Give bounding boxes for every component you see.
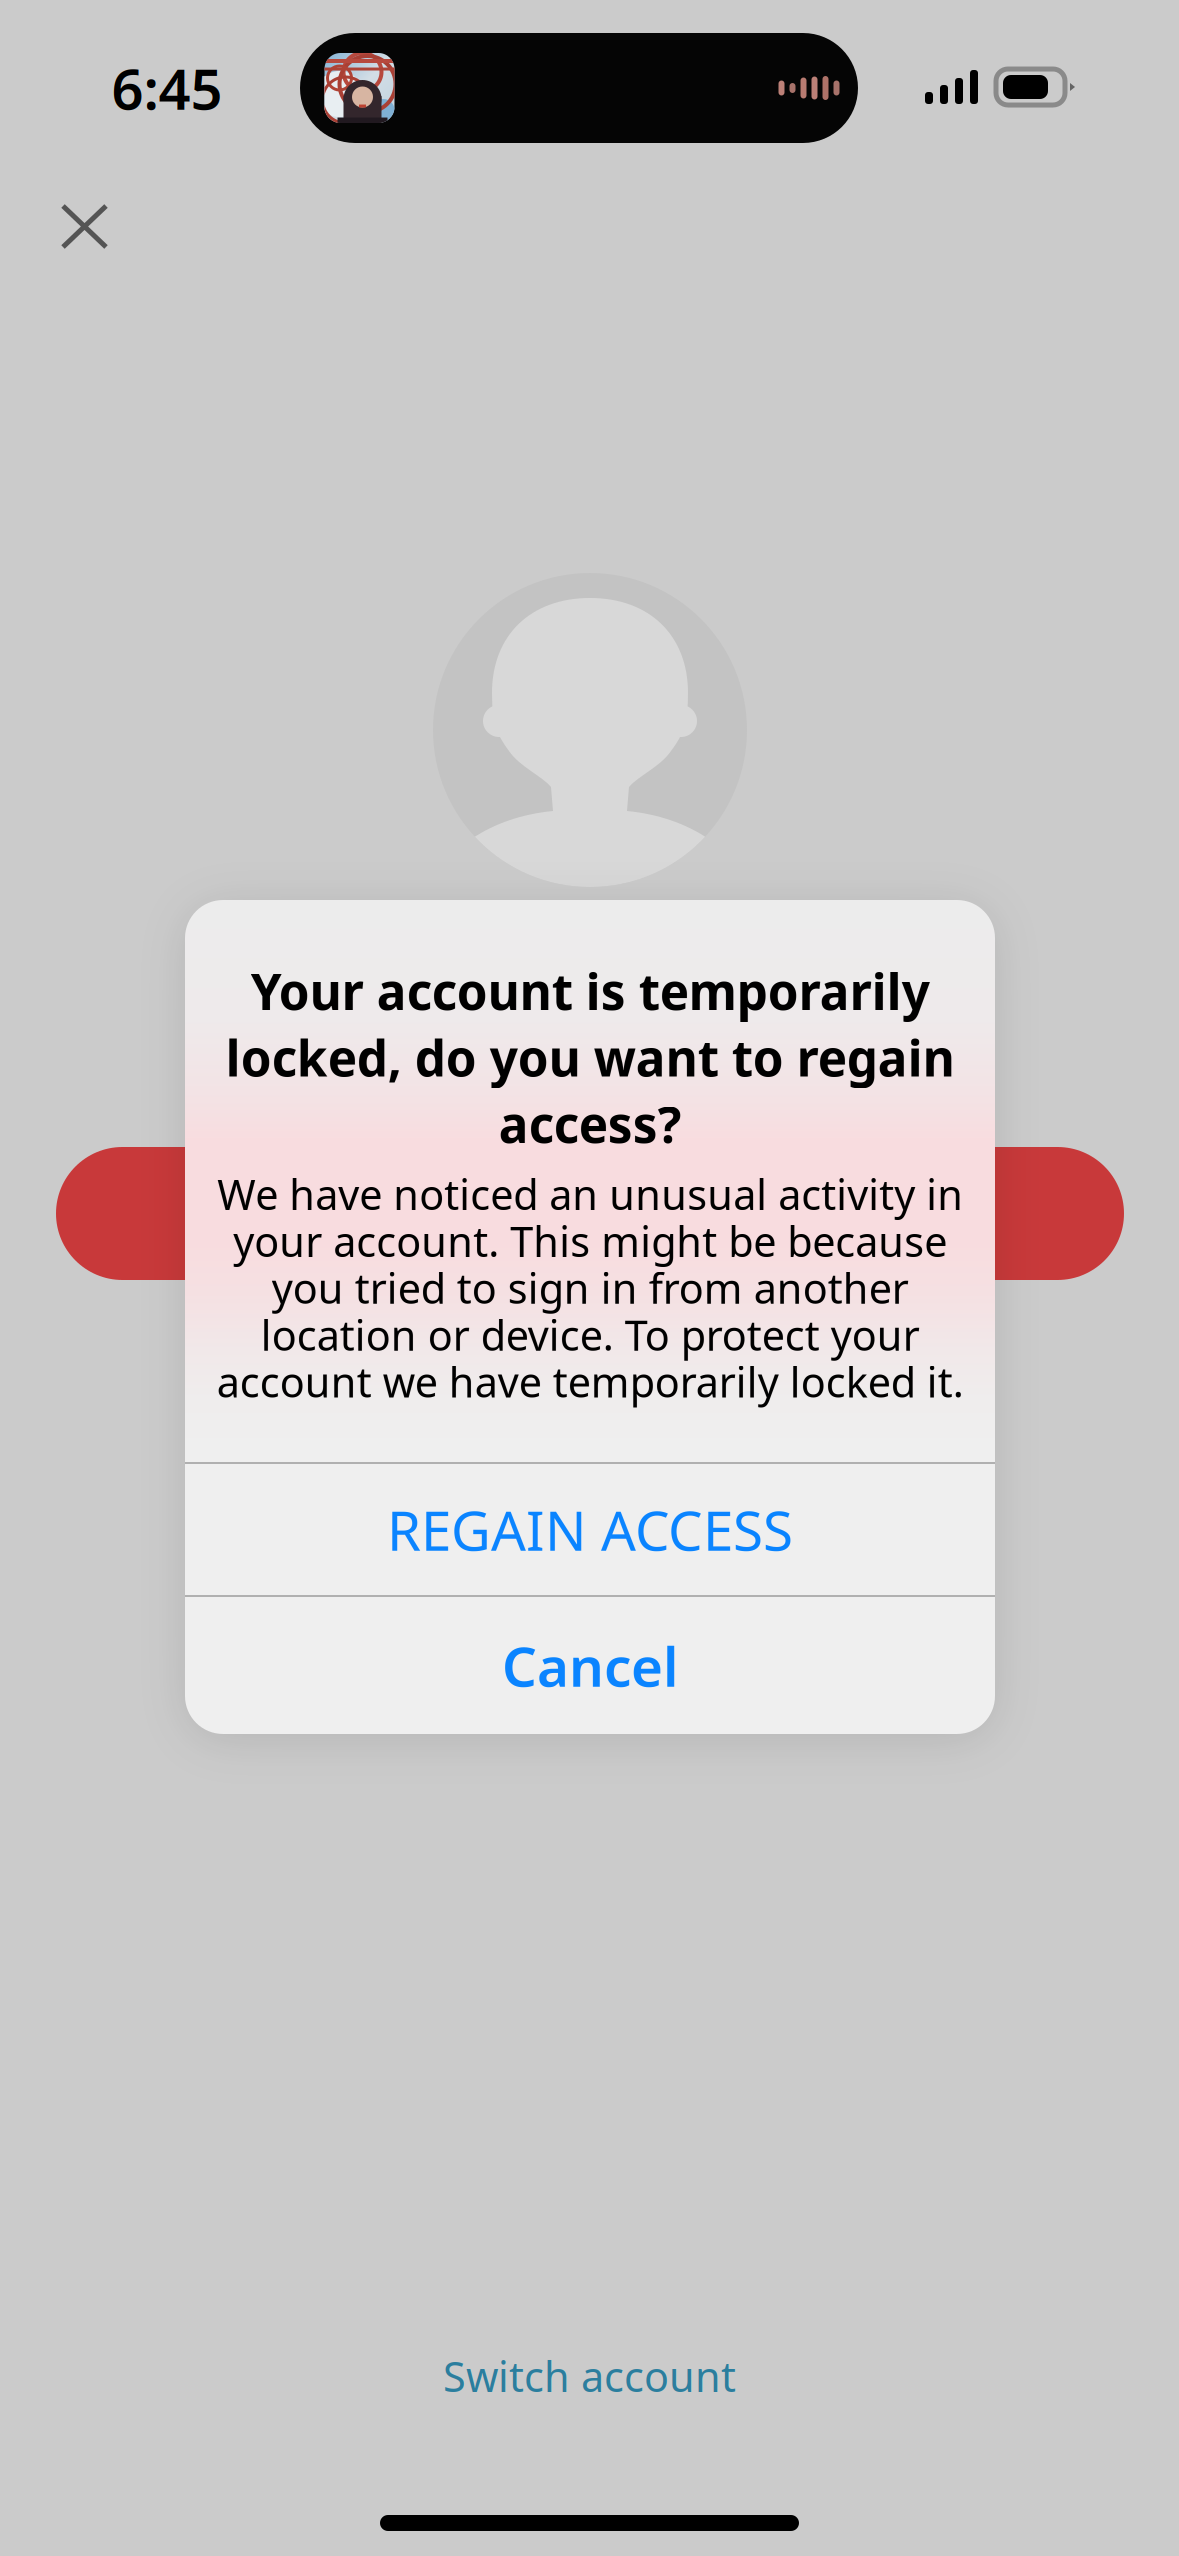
staticText: Cancel xyxy=(502,1629,678,1702)
staticText: 6:45 xyxy=(111,51,222,125)
staticText: REGAIN ACCESS xyxy=(387,1493,793,1566)
button[interactable]: Cancel xyxy=(185,1597,995,1734)
staticText: Your account is temporarily locked, do y… xyxy=(225,958,954,1156)
staticText: Switch account xyxy=(443,2349,736,2403)
button[interactable]: Close xyxy=(33,176,136,277)
staticText: We have noticed an unusual activity in y… xyxy=(216,1166,963,1409)
button[interactable]: Switch account xyxy=(389,2340,789,2412)
button[interactable]: REGAIN ACCESS xyxy=(185,1464,995,1595)
